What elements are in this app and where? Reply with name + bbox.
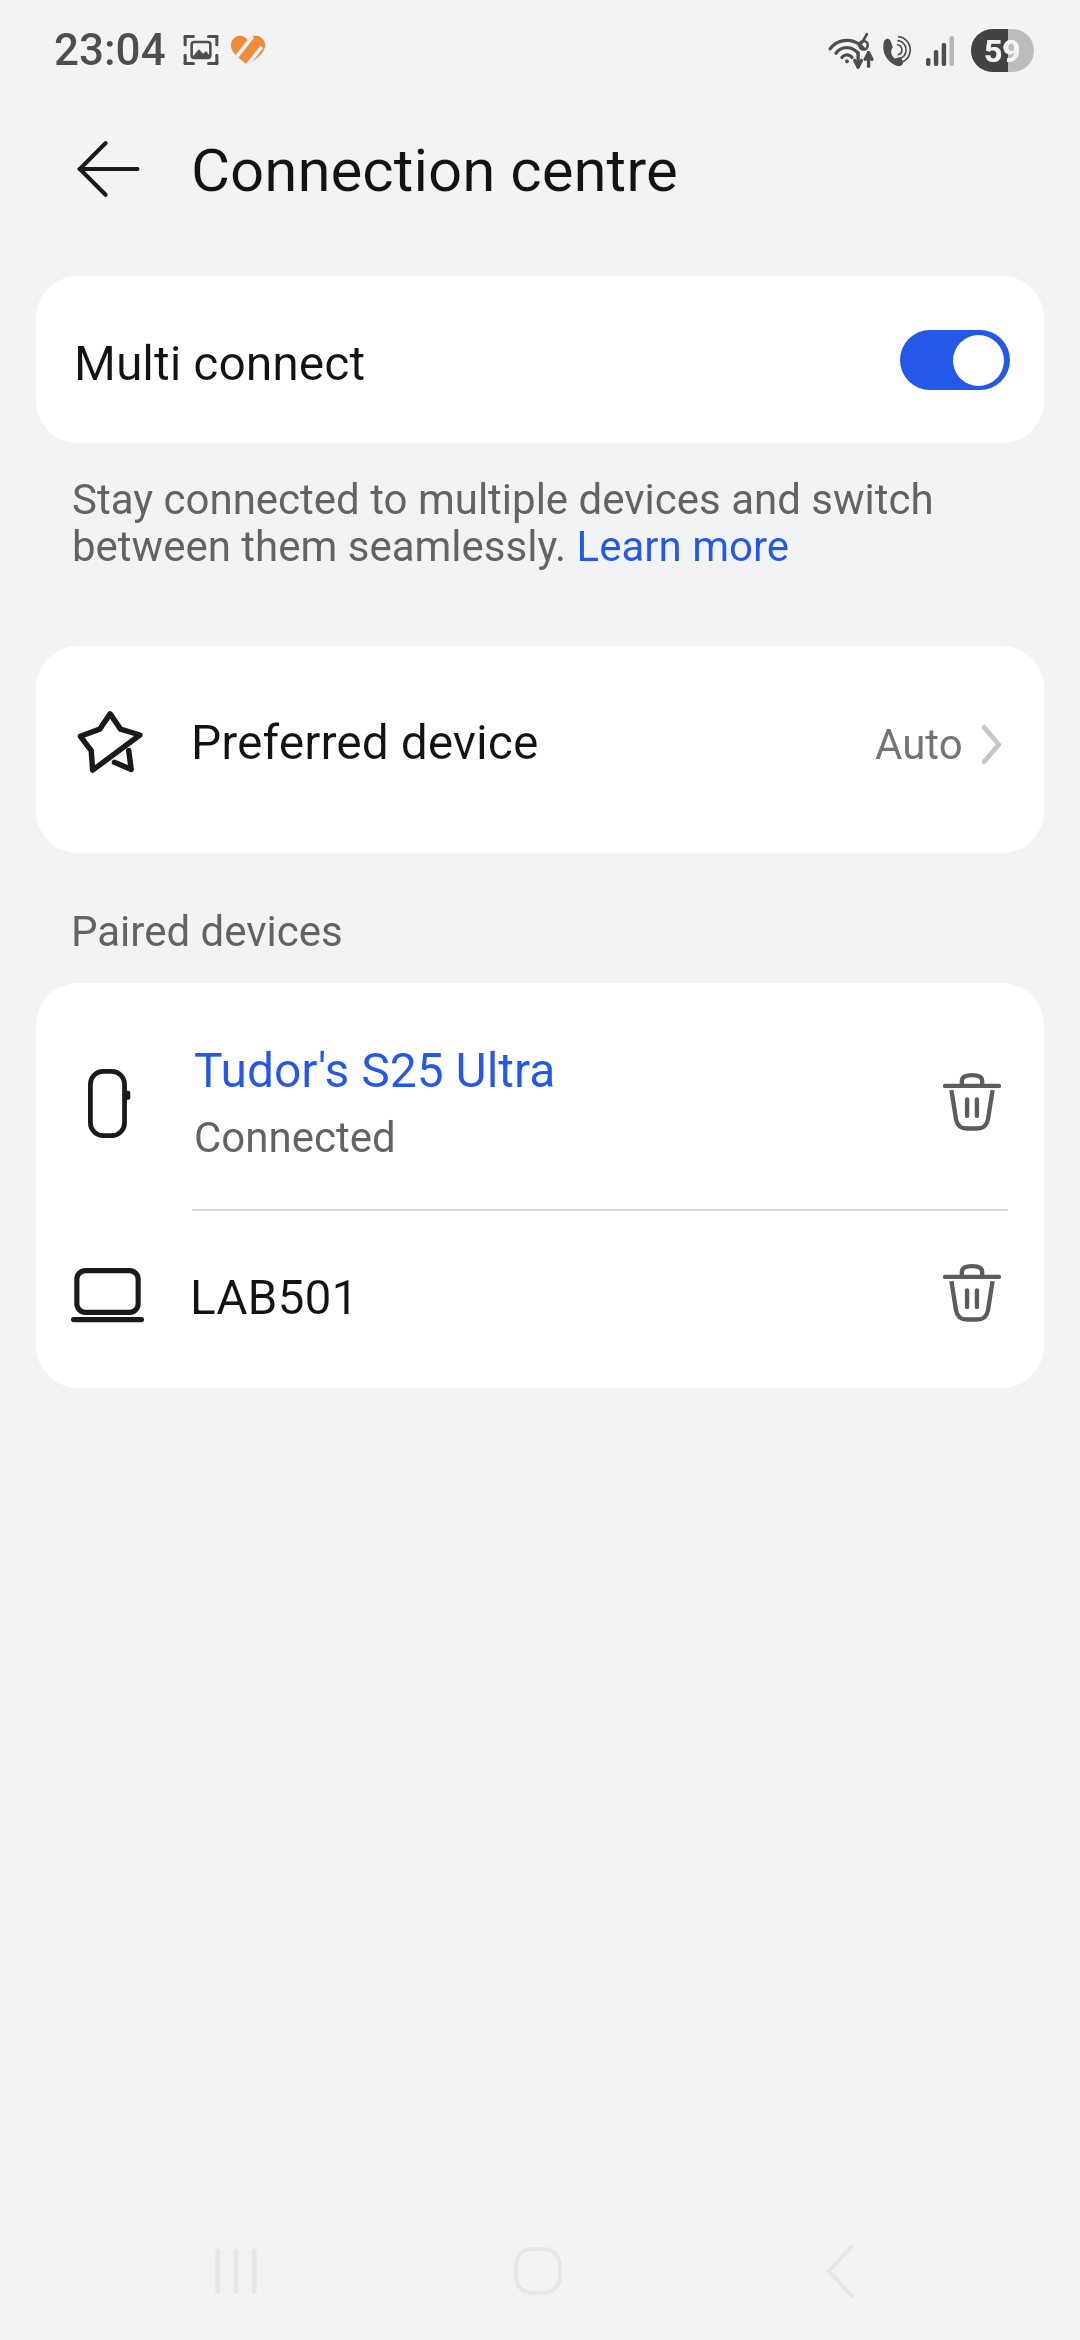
button[interactable]: Tudor's S25 Ultra <box>36 983 1044 1209</box>
button[interactable]: Preferred device <box>36 646 1044 853</box>
staticText: Paired devices <box>71 907 343 956</box>
staticText: Stay connected to multiple devices and s… <box>72 475 982 571</box>
button[interactable]: Unpair LAB501 <box>929 1251 1015 1337</box>
staticText: 59 <box>984 32 1021 70</box>
staticText: Connection centre <box>191 135 678 205</box>
staticText: Tudor's S25 Ultra <box>194 1042 556 1098</box>
button[interactable]: Multi connect toggle <box>900 330 1010 390</box>
button[interactable]: Learn more <box>577 524 790 568</box>
staticText: 23:04 <box>54 24 166 76</box>
button[interactable]: Multi connect <box>36 276 1044 443</box>
button[interactable]: LAB501 <box>36 1211 1044 1388</box>
button[interactable]: Home <box>494 2227 582 2315</box>
button[interactable]: Unpair Tudor's S25 Ultra <box>929 1060 1015 1146</box>
staticText: Auto <box>875 720 963 769</box>
staticText: Connected <box>194 1113 396 1162</box>
staticText: LAB501 <box>190 1269 929 1325</box>
button[interactable]: Recent apps <box>192 2227 280 2315</box>
button[interactable]: Navigate up <box>66 127 150 211</box>
staticText: Preferred device <box>191 714 539 770</box>
staticText: Multi connect <box>74 335 366 391</box>
